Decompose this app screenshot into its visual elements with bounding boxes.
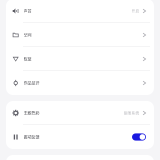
staticText: 权益 [23, 56, 31, 62]
staticText: 开启 [132, 8, 140, 14]
button[interactable]: 震动反馈 [6, 125, 154, 149]
staticText: 震动反馈 [23, 134, 39, 140]
button[interactable]: 作品显评 [6, 71, 154, 95]
button[interactable]: 主题色彩 [6, 101, 154, 125]
staticText: 空间 [23, 32, 31, 38]
staticText: 声音 [23, 8, 31, 14]
button[interactable]: 空间 [6, 23, 154, 47]
button[interactable]: 权益 [6, 47, 154, 71]
button[interactable]: 震动反馈开关 [132, 133, 146, 141]
staticText: 作品显评 [23, 80, 39, 86]
staticText: 跟随系统 [124, 110, 140, 116]
staticText: 主题色彩 [23, 110, 39, 116]
button[interactable]: 声音 [6, 0, 154, 23]
